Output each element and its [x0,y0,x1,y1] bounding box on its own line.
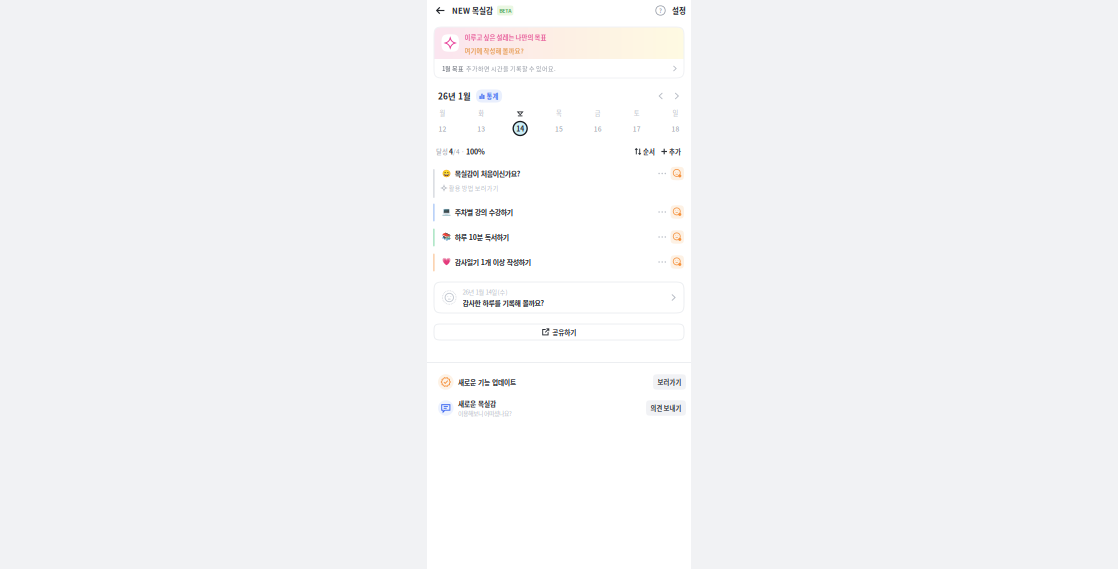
staticText: 15 [555,124,563,133]
staticText: 26년 1월 14일(수) [463,287,508,296]
staticText: /4 · [453,147,466,156]
staticText: 의견 보내기 [650,403,681,413]
staticText: 주차별 강의 수강하기 [455,207,513,217]
button[interactable]: 순서 [635,147,655,156]
staticText: 추가하면 시간을 기록할 수 있어요. [464,64,556,73]
staticText: 12 [438,124,446,133]
button[interactable]: 이루고 싶은 설레는 나만의 목표 [434,27,684,59]
staticText: 추가 [669,147,681,156]
button[interactable]: 13 [474,121,488,136]
button[interactable]: 통계 [476,89,502,103]
staticText: BETA [499,7,511,14]
staticText: 14 [516,124,524,133]
button[interactable]: 18 [668,121,682,136]
button[interactable]: 26년 1월 14일(수) [434,282,684,313]
button[interactable]: 활용 방법 보러가기 [435,182,499,194]
button[interactable]: Back [433,2,448,18]
staticText: 감사한 하루를 기록해 볼까요? [463,298,545,308]
button[interactable]: 14 [513,121,527,136]
staticText: 😄 [442,169,451,178]
button[interactable]: Record mood [668,205,684,219]
staticText: 월 [439,108,445,118]
staticText: 활용 방법 보러가기 [449,184,499,192]
staticText: 설정 [672,5,686,16]
button[interactable]: 설정 [667,2,686,19]
staticText: 화 [478,108,484,118]
staticText: 📚 [442,233,451,241]
staticText: 보러가기 [657,377,681,387]
button[interactable]: More options [655,228,668,245]
button[interactable]: Record mood [668,230,684,244]
staticText: 💗 [442,258,451,266]
staticText: 1월 목표 [442,64,464,73]
staticText: NEW 목실감 [452,5,493,16]
staticText: 목실감이 처음이신가요? [455,168,521,178]
staticText: 💻 [442,208,451,216]
button[interactable]: More options [655,203,668,220]
button[interactable]: Record mood [668,255,684,269]
button[interactable]: Record mood [668,167,684,180]
staticText: 새로운 기능 업데이트 [458,377,516,387]
button[interactable]: 공유하기 [434,324,684,340]
staticText: 일 [672,108,678,118]
button[interactable]: More options [655,165,668,182]
button[interactable]: 의견 보내기 [646,400,686,416]
button[interactable]: 17 [630,121,644,136]
button[interactable]: 보러가기 [653,374,686,390]
staticText: 감사일기 1개 이상 작성하기 [455,257,531,267]
button[interactable]: 추가 [655,147,681,156]
button[interactable]: 16 [591,121,605,136]
staticText: 하루 10분 독서하기 [455,232,509,242]
staticText: 달성 [436,147,449,156]
staticText: 목 [556,108,562,118]
staticText: 13 [477,124,485,133]
staticText: 이용해보니 어떠셨나요? [458,409,512,417]
staticText: 4 [449,147,453,156]
button[interactable]: More options [655,253,668,270]
staticText: 토 [634,108,640,118]
staticText: 18 [671,124,679,133]
button[interactable]: 12 [435,121,449,136]
staticText: ? [659,6,662,15]
button[interactable]: 15 [552,121,566,136]
staticText: 새로운 목실감 [458,399,496,408]
staticText: 100% [466,146,485,157]
staticText: 금 [595,108,601,118]
button[interactable]: Help [654,3,667,17]
staticText: 통계 [487,91,499,101]
staticText: 17 [633,124,641,133]
staticText: 이루고 싶은 설레는 나만의 목표 [464,33,546,42]
button[interactable]: Next week [669,88,685,104]
staticText: 16 [594,124,602,133]
staticText: 공유하기 [552,327,576,337]
staticText: 26년 1월 [438,90,471,102]
button[interactable]: 1월 목표 [434,59,684,78]
staticText: 여기에 작성해 볼까요? [464,46,523,55]
button[interactable]: Previous week [653,88,669,104]
staticText: 순서 [643,147,655,156]
